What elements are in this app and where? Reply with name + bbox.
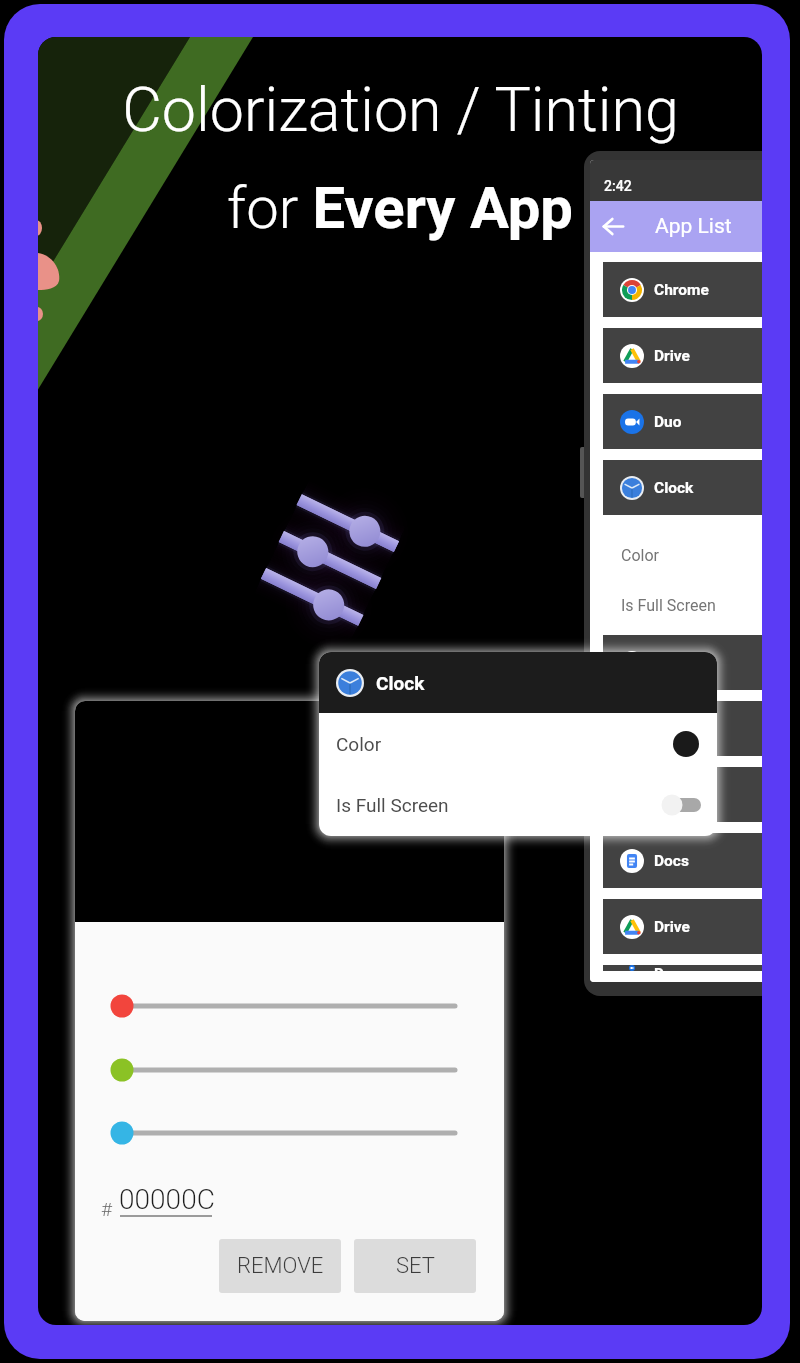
button[interactable]: Is Full Screen — [590, 580, 762, 630]
staticText: for Every App — [227, 174, 573, 242]
staticText: Colorization / Tinting — [122, 74, 679, 145]
button[interactable]: Back — [590, 201, 762, 252]
button[interactable]: REMOVE — [219, 1239, 341, 1293]
staticText: Is Full Screen — [621, 596, 716, 615]
staticText: Gmail — [654, 786, 695, 804]
staticText: Duo — [654, 413, 682, 431]
button[interactable]: Drive — [603, 899, 762, 954]
button[interactable]: Color — [590, 530, 762, 580]
button[interactable]: Drive — [603, 328, 762, 383]
button[interactable]: SET — [354, 1239, 476, 1293]
staticText: Maps — [654, 720, 693, 738]
staticText: Color — [621, 546, 659, 565]
button[interactable]: Gmail — [603, 767, 762, 822]
staticText: # — [101, 1198, 113, 1220]
button[interactable]: Maps — [603, 701, 762, 756]
button[interactable]: Docs — [603, 833, 762, 888]
staticText: REMOVE — [237, 1253, 324, 1279]
staticText: Chrome — [654, 281, 709, 299]
button[interactable]: Clock — [603, 460, 762, 515]
staticText: Drive — [654, 347, 690, 365]
button[interactable]: Is Full Screen — [319, 774, 717, 836]
button[interactable]: Duo — [603, 394, 762, 449]
staticText: 2:42 — [604, 178, 632, 194]
button[interactable]: 00000C — [119, 1183, 215, 1216]
staticText: Clock — [654, 479, 694, 497]
button[interactable]: Photos — [603, 635, 762, 690]
staticText: Clock — [376, 672, 425, 694]
button[interactable]: Color — [319, 713, 717, 774]
button[interactable]: # — [101, 1198, 113, 1220]
button[interactable]: Duo — [603, 965, 762, 971]
staticText: Is Full Screen — [336, 794, 449, 816]
button[interactable]: Back — [590, 201, 636, 252]
staticText: Drive — [654, 918, 690, 936]
button[interactable]: Chrome — [603, 262, 762, 317]
staticText: App List — [655, 214, 732, 239]
staticText: Duo — [654, 965, 682, 971]
staticText: 00000C — [119, 1183, 215, 1216]
staticText: Color — [336, 733, 382, 755]
staticText: Docs — [654, 852, 689, 870]
staticText: SET — [396, 1253, 435, 1279]
